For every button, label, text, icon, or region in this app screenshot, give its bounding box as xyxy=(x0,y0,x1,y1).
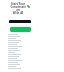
staticText: Start Your Conversation With AI xyxy=(10,2,26,15)
button[interactable] xyxy=(10,27,31,32)
